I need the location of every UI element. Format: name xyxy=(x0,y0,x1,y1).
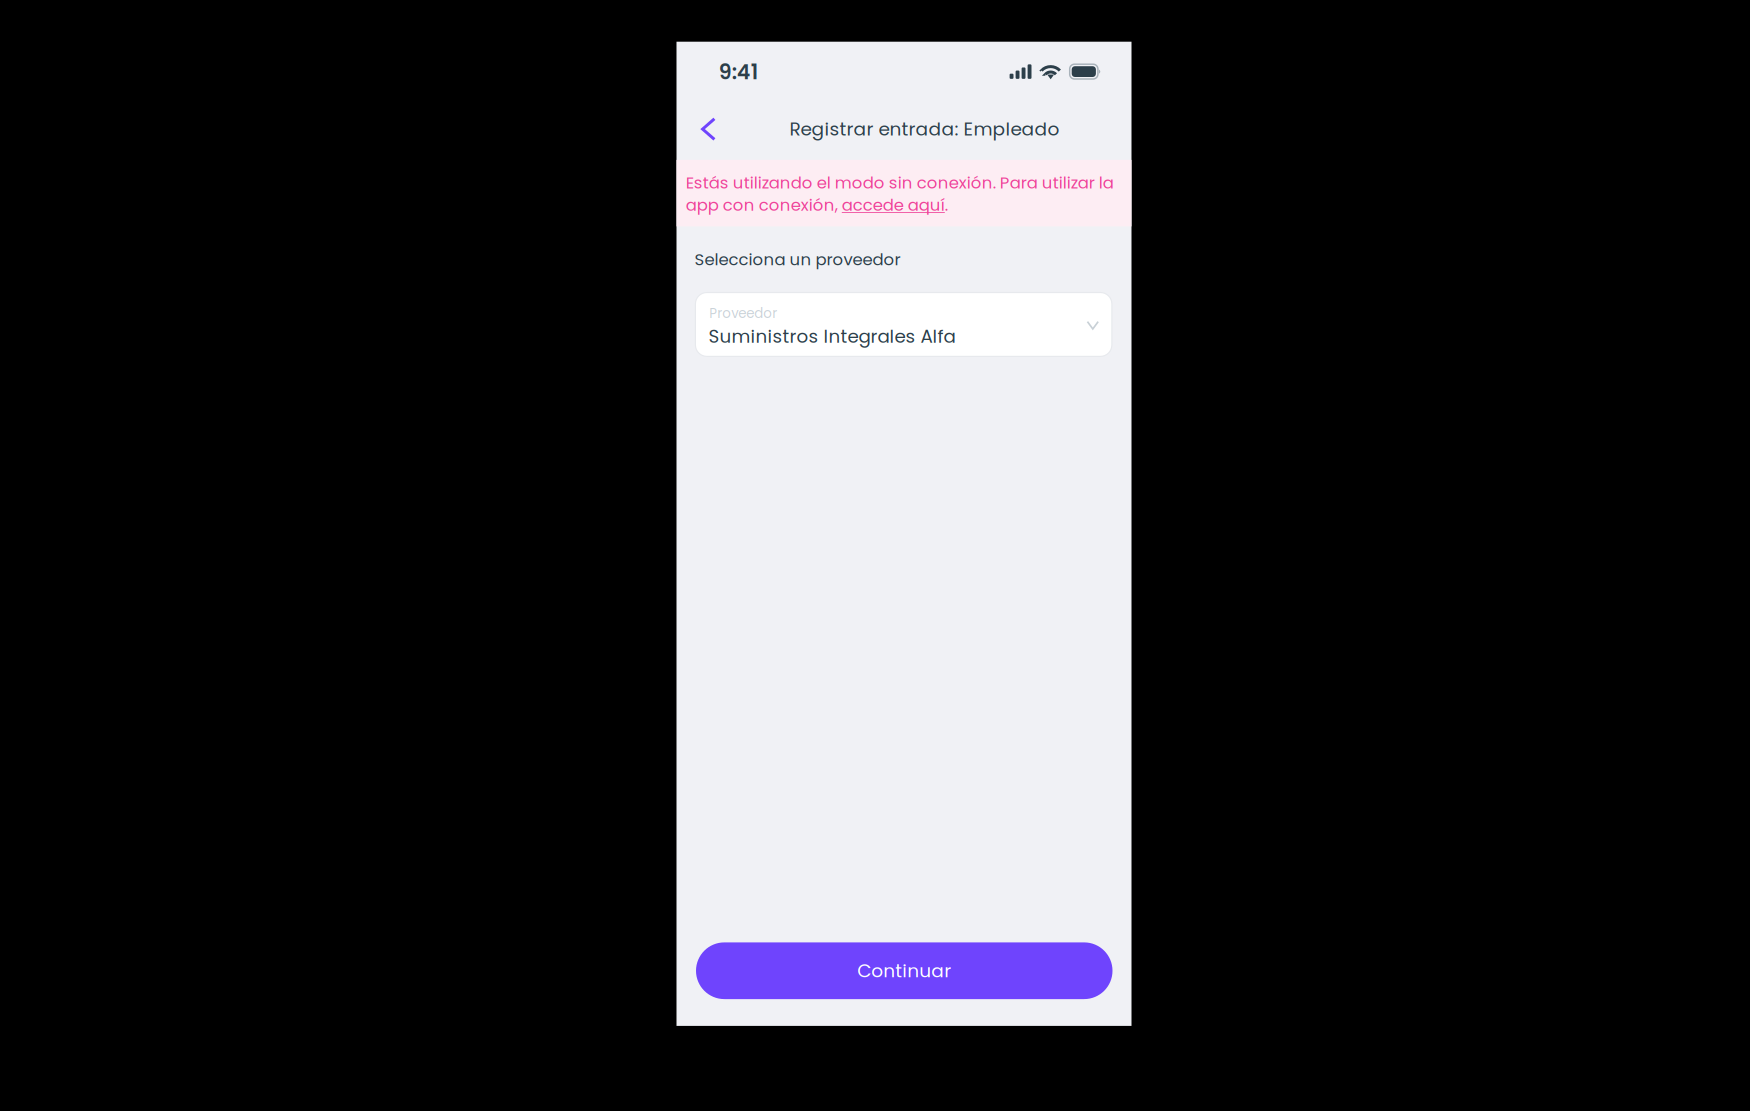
staticText: Estás utilizando el modo sin conexión. P… xyxy=(686,171,1114,194)
button[interactable]: Continuar xyxy=(696,942,1112,999)
staticText: Registrar entrada: Empleado xyxy=(789,116,1059,142)
button[interactable]: Atrás xyxy=(686,107,730,151)
staticText: Continuar xyxy=(857,958,951,984)
button[interactable]: Proveedor xyxy=(695,292,1112,356)
staticText: 9:41 xyxy=(719,58,758,86)
button[interactable]: accede aquí xyxy=(842,193,945,217)
staticText: Suministros Integrales Alfa xyxy=(708,324,955,349)
staticText: accede aquí xyxy=(842,193,945,217)
staticText: app con conexión, xyxy=(686,193,842,217)
button[interactable]: Estás utilizando el modo sin conexión. P… xyxy=(676,160,1131,226)
staticText: . xyxy=(945,193,948,217)
staticText: Proveedor xyxy=(709,304,777,323)
staticText: Selecciona un proveedor xyxy=(694,248,900,271)
